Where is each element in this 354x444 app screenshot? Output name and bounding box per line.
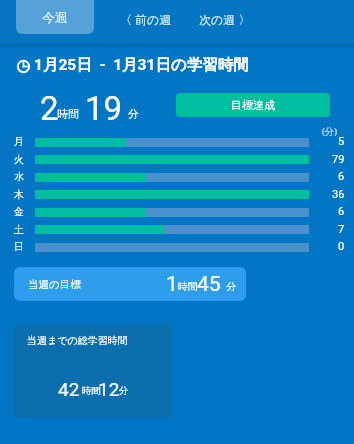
staticText: 36: [332, 188, 345, 201]
staticText: 金: [14, 205, 24, 218]
staticText: 6: [338, 170, 345, 183]
button[interactable]: 目標達成: [176, 93, 330, 117]
staticText: 今週: [42, 9, 68, 25]
staticText: 〈 前の週: [120, 11, 172, 27]
button[interactable]: 当週の目標: [14, 267, 246, 301]
staticText: (分): [322, 125, 338, 138]
staticText: 木: [14, 188, 24, 201]
staticText: 日: [14, 240, 24, 253]
staticText: 5: [338, 135, 345, 148]
staticText: 分: [119, 385, 129, 397]
button[interactable]: 当週までの総学習時間: [14, 325, 172, 418]
staticText: 0: [338, 240, 345, 253]
staticText: 分: [226, 280, 236, 293]
staticText: 土: [14, 223, 24, 236]
staticText: 6: [338, 205, 345, 218]
staticText: 当週の目標: [28, 278, 81, 291]
staticText: 1: [166, 272, 178, 297]
staticText: 火: [14, 153, 24, 166]
staticText: 時間: [82, 385, 101, 397]
staticText: 19: [85, 89, 123, 128]
staticText: 目標達成: [231, 98, 275, 112]
staticText: 1月25日 - 1月31日の学習時間: [34, 55, 249, 75]
button[interactable]: 今週: [16, 0, 94, 34]
staticText: 7: [338, 223, 345, 236]
staticText: 45: [197, 272, 221, 297]
staticText: 2: [40, 89, 59, 128]
staticText: 12: [98, 378, 120, 400]
staticText: 月: [14, 135, 24, 148]
staticText: 当週までの総学習時間: [27, 334, 128, 347]
staticText: 時間: [57, 107, 79, 121]
staticText: 次の週 〉: [199, 11, 251, 27]
button[interactable]: 次の週 〉: [186, 6, 264, 32]
staticText: 時間: [178, 280, 198, 293]
staticText: 42: [58, 378, 80, 400]
button[interactable]: 〈 前の週: [107, 6, 185, 32]
staticText: 79: [332, 153, 345, 166]
staticText: 水: [14, 170, 24, 183]
staticText: 分: [128, 107, 139, 121]
